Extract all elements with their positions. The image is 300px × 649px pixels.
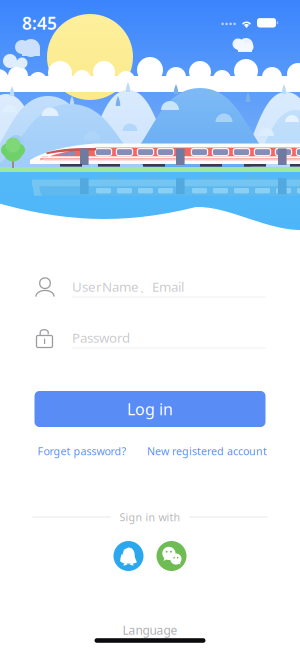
staticText: Password (72, 329, 130, 346)
staticText: Sign in with (119, 510, 180, 524)
button[interactable]: Sign in with QQ (113, 541, 143, 571)
staticText: Language (122, 622, 177, 638)
button[interactable]: Sign in with WeChat (156, 541, 186, 571)
staticText: UserName、Email (72, 278, 184, 295)
staticText: 8:45 (22, 11, 57, 34)
button[interactable]: Forget password? (37, 444, 126, 458)
staticText: Forget password? (37, 444, 126, 458)
staticText: New registered account (147, 444, 267, 458)
button[interactable]: Language (122, 623, 177, 636)
button[interactable]: Log in (34, 391, 265, 427)
staticText: Log in (127, 398, 173, 420)
button[interactable]: New registered account (147, 444, 267, 458)
